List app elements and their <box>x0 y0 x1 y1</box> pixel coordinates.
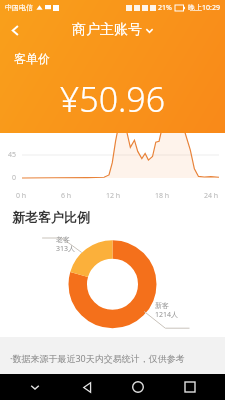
staticText: 12 h <box>106 191 121 201</box>
staticText: 1214人 <box>155 310 179 320</box>
staticText: 313人 <box>56 244 76 254</box>
staticText: 新客 <box>155 301 169 310</box>
button[interactable]: Back <box>0 15 30 45</box>
staticText: 客单价 <box>14 51 50 66</box>
staticText: 21% <box>158 3 172 13</box>
button[interactable]: Hide keyboard <box>18 374 52 400</box>
staticText: 18 h <box>155 191 170 201</box>
button[interactable]: 商户主账号 <box>72 21 154 39</box>
staticText: ·数据来源于最近30天内交易统计，仅供参考 <box>10 352 185 364</box>
button[interactable]: Recent apps <box>173 374 207 400</box>
staticText: 0 <box>12 173 17 183</box>
staticText: 24 h <box>204 191 219 201</box>
staticText: 老客 <box>56 235 70 244</box>
staticText: 6 h <box>61 191 72 201</box>
staticText: ¥50.96 <box>0 76 225 122</box>
staticText: 0 h <box>16 191 27 201</box>
button[interactable]: Back <box>70 374 104 400</box>
staticText: 新老客户比例 <box>12 209 90 225</box>
staticText: 晚上10:29 <box>188 3 220 13</box>
staticText: 中国电信 <box>5 3 33 12</box>
button[interactable]: Home <box>121 374 155 400</box>
staticText: 商户主账号 <box>72 21 142 39</box>
staticText: 45 <box>8 150 17 160</box>
